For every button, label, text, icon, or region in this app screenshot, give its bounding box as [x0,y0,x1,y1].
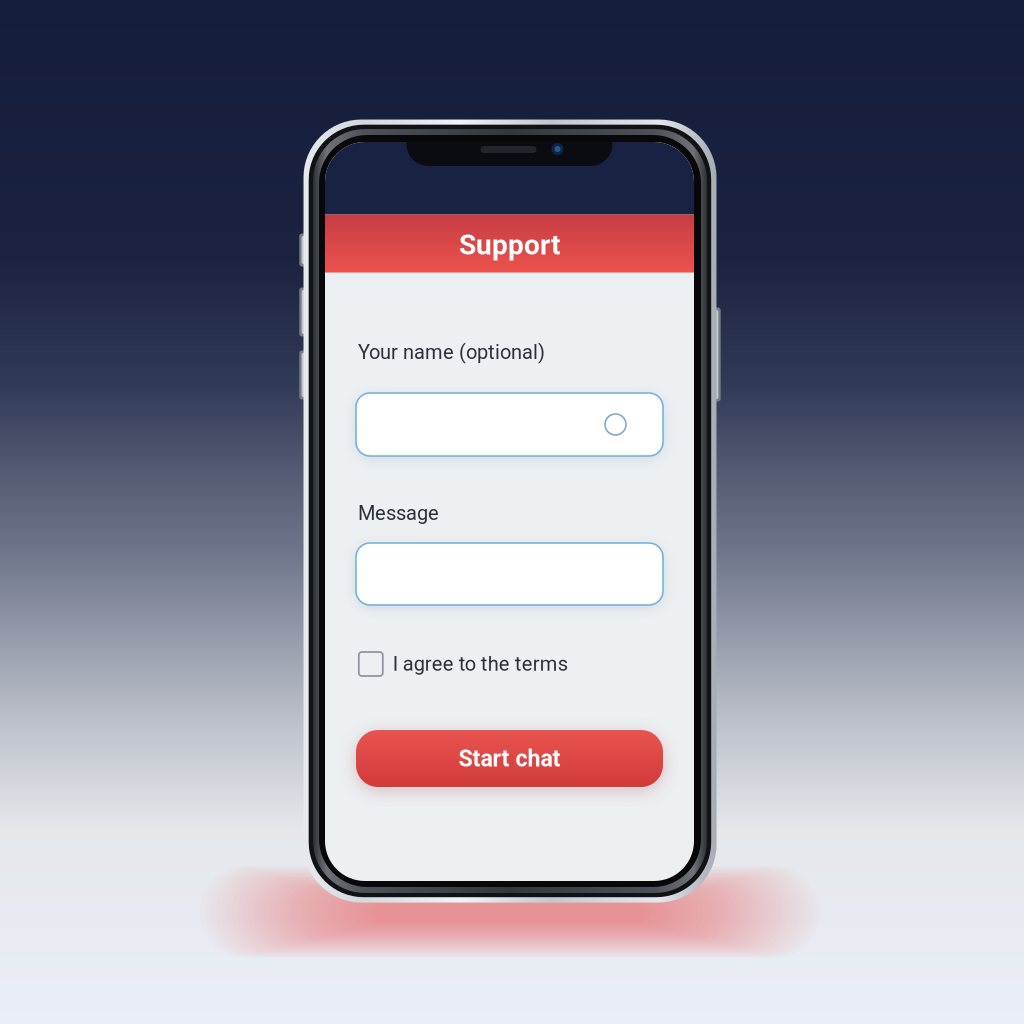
staticText: Message [358,501,439,525]
staticText: I agree to the terms [393,652,568,676]
staticText: Support [459,229,560,261]
button[interactable]: I agree to the terms [359,652,568,676]
button[interactable]: Start chat [356,730,663,787]
staticText: Start chat [458,745,560,772]
staticText: Your name (optional) [358,340,545,364]
button[interactable]: Support [325,214,694,272]
